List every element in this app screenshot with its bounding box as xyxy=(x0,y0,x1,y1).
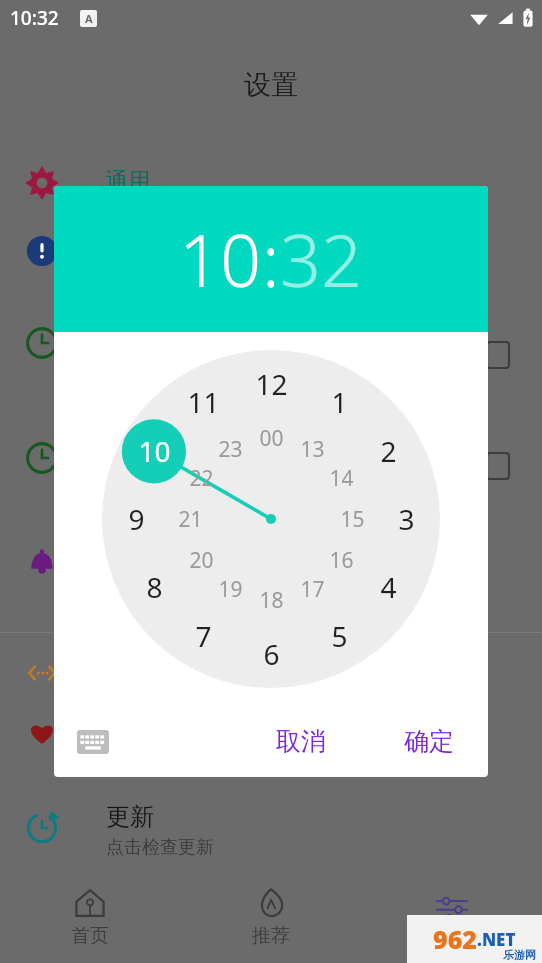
staticText: 取消 xyxy=(276,726,326,757)
staticText: 16 xyxy=(329,546,354,575)
staticText: 乐游网 xyxy=(503,948,536,962)
staticText: 19 xyxy=(218,575,243,604)
button[interactable]: 32 xyxy=(280,210,363,308)
staticText: 确定 xyxy=(404,726,454,757)
staticText: 00 xyxy=(259,424,284,453)
staticText: 8 xyxy=(146,568,163,606)
staticText: 21 xyxy=(178,505,203,534)
staticText: A xyxy=(85,11,93,26)
staticText: 14 xyxy=(329,464,354,493)
staticText: 11 xyxy=(187,383,220,421)
staticText: 设置 xyxy=(244,68,298,102)
staticText: 13 xyxy=(300,435,325,464)
staticText: 6 xyxy=(263,635,280,673)
button[interactable]: Settings xyxy=(361,871,542,963)
staticText: 20 xyxy=(189,546,214,575)
staticText: 10:32 xyxy=(10,5,59,31)
staticText: 18 xyxy=(259,586,284,615)
button[interactable]: 10 xyxy=(179,210,262,308)
staticText: 5 xyxy=(331,617,348,655)
staticText: 通用 xyxy=(105,167,151,196)
staticText: 首页 xyxy=(71,924,109,948)
staticText: 15 xyxy=(340,505,365,534)
staticText: .NET xyxy=(477,928,516,951)
staticText: 10 xyxy=(138,432,171,470)
staticText: 3 xyxy=(398,500,415,538)
button[interactable]: 首页 xyxy=(0,871,180,963)
button[interactable]: Clock face, hour 10 selected xyxy=(102,350,440,688)
staticText: 4 xyxy=(380,568,397,606)
staticText: : xyxy=(262,210,280,308)
button[interactable]: Switch to keyboard input xyxy=(76,725,110,759)
staticText: 推荐 xyxy=(252,924,290,948)
staticText: 17 xyxy=(300,575,325,604)
staticText: 12 xyxy=(255,365,288,403)
staticText: 9 xyxy=(128,500,145,538)
staticText: 962 xyxy=(433,922,477,956)
button[interactable]: 取消 xyxy=(262,718,340,765)
staticText: 22 xyxy=(189,464,214,493)
button[interactable]: 确定 xyxy=(390,718,468,765)
staticText: 7 xyxy=(195,617,212,655)
button[interactable]: 推荐 xyxy=(180,871,361,963)
staticText: 2 xyxy=(380,432,397,470)
staticText: 23 xyxy=(218,435,243,464)
staticText: 1 xyxy=(331,383,348,421)
staticText: 点击检查更新 xyxy=(106,836,214,859)
staticText: 更新 xyxy=(106,802,154,832)
